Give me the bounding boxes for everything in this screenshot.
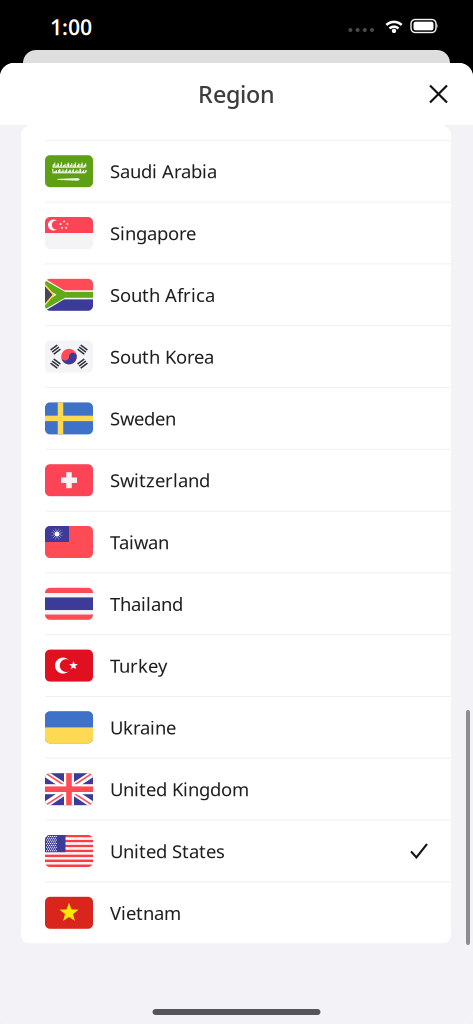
button[interactable]: Switzerland xyxy=(21,450,451,512)
button[interactable]: Saudi Arabia xyxy=(21,141,451,203)
button[interactable]: Vietnam xyxy=(21,882,451,943)
button[interactable]: Taiwan xyxy=(21,512,451,573)
staticText: Taiwan xyxy=(110,529,169,555)
staticText: Sweden xyxy=(110,406,176,431)
staticText: Vietnam xyxy=(110,900,181,925)
button[interactable]: Ukraine xyxy=(21,697,451,759)
staticText: Singapore xyxy=(110,220,196,246)
staticText: 1:00 xyxy=(50,13,92,41)
staticText: Thailand xyxy=(110,591,183,616)
staticText: Saudi Arabia xyxy=(110,159,217,184)
button[interactable]: South Korea xyxy=(21,326,451,388)
staticText: Ukraine xyxy=(110,715,176,740)
staticText: Turkey xyxy=(110,653,167,678)
button[interactable]: Thailand xyxy=(21,573,451,635)
button[interactable]: Singapore xyxy=(21,203,451,264)
button[interactable]: Sweden xyxy=(21,388,451,450)
button[interactable]: South Africa xyxy=(21,264,451,326)
button[interactable]: Close xyxy=(418,73,459,114)
staticText: South Korea xyxy=(110,344,214,369)
staticText: Switzerland xyxy=(110,468,210,493)
button[interactable]: United Kingdom xyxy=(21,759,451,821)
staticText: United States xyxy=(110,838,225,864)
button[interactable]: Turkey xyxy=(21,635,451,697)
staticText: United Kingdom xyxy=(110,777,249,802)
staticText: Region xyxy=(198,78,275,110)
button[interactable]: United States xyxy=(21,821,451,882)
staticText: South Africa xyxy=(110,282,215,307)
